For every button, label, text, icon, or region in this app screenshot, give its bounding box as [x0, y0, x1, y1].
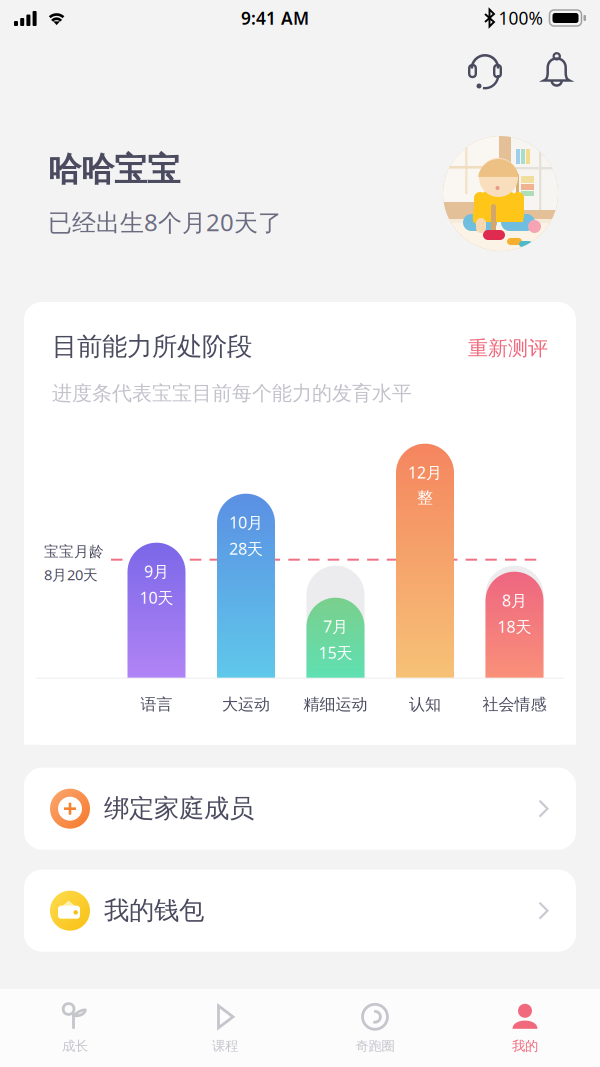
staticText: 28天: [229, 538, 263, 559]
staticText: 整: [417, 488, 433, 508]
staticText: 宝宝月龄: [44, 543, 104, 561]
staticText: 认知: [409, 695, 441, 714]
staticText: 9月: [144, 561, 169, 582]
staticText: 进度条代表宝宝目前每个能力的发育水平: [52, 381, 412, 406]
staticText: 成长: [62, 1038, 88, 1054]
staticText: 我的: [512, 1038, 538, 1054]
staticText: 绑定家庭成员: [104, 793, 254, 824]
staticText: 目前能力所处阶段: [52, 331, 252, 362]
button[interactable]: 客服: [457, 46, 513, 94]
button[interactable]: 奇跑圈: [300, 989, 450, 1067]
staticText: 语言: [140, 695, 172, 714]
staticText: 大运动: [222, 695, 270, 714]
staticText: 7月: [323, 616, 348, 637]
staticText: 社会情感: [482, 695, 546, 714]
staticText: 我的钱包: [104, 895, 204, 926]
staticText: 9:41 AM: [241, 6, 309, 29]
button[interactable]: 绑定家庭成员: [0, 768, 600, 850]
staticText: 8月: [502, 590, 527, 611]
staticText: 课程: [212, 1038, 238, 1054]
staticText: 奇跑圈: [355, 1038, 394, 1054]
button[interactable]: 课程: [150, 989, 300, 1067]
staticText: 18天: [497, 616, 531, 637]
staticText: 15天: [318, 642, 352, 663]
staticText: 8月20天: [44, 565, 98, 584]
staticText: 10月: [229, 512, 263, 533]
button[interactable]: 我的钱包: [0, 870, 600, 952]
staticText: 哈哈宝宝: [48, 149, 180, 190]
staticText: 重新测评: [468, 336, 548, 361]
button[interactable]: 成长: [0, 989, 150, 1067]
staticText: 精细运动: [303, 695, 367, 714]
staticText: 10天: [139, 587, 173, 608]
staticText: 100%: [498, 6, 542, 29]
staticText: 已经出生8个月20天了: [48, 206, 282, 238]
button[interactable]: 通知: [529, 46, 585, 94]
staticText: 12月: [408, 462, 442, 483]
button[interactable]: 重新测评: [468, 336, 548, 361]
button[interactable]: 我的: [450, 989, 600, 1067]
